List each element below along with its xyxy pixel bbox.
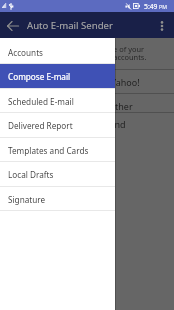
button[interactable]: Compose E-mail [0, 64, 115, 89]
staticText: previously configured e-mail accounts. [13, 52, 147, 62]
button[interactable]: Yahoo! [111, 73, 174, 91]
button[interactable]: Other [108, 97, 174, 115]
button[interactable]: Accounts [0, 40, 115, 65]
staticText: Compose E-mail [8, 71, 71, 82]
staticText: PM [159, 3, 167, 10]
staticText: Templates and Cards [8, 145, 89, 156]
staticText: Other [108, 100, 133, 112]
button[interactable]: Local Drafts [0, 162, 115, 187]
staticText: Compose a new message using one of your [0, 44, 144, 54]
button[interactable]: Scheduled E-mail [0, 89, 115, 114]
staticText: Delivered Report [8, 120, 73, 131]
button[interactable]: Outbound [82, 115, 174, 133]
staticText: Outbound [82, 118, 126, 130]
button[interactable]: Templates and Cards [0, 138, 115, 163]
staticText: Scheduled E-mail [8, 96, 74, 107]
button[interactable]: Navigate up [0, 12, 26, 38]
button[interactable]: Delivered Report [0, 113, 115, 138]
staticText: Local Drafts [8, 169, 54, 180]
staticText: 5:49 [144, 2, 158, 11]
staticText: Auto E-mail Sender [27, 19, 113, 32]
staticText: Signature [8, 194, 46, 205]
staticText: Yahoo! [111, 76, 140, 88]
button[interactable]: More options [150, 12, 174, 38]
staticText: Accounts [8, 47, 44, 58]
button[interactable]: Signature [0, 187, 115, 212]
